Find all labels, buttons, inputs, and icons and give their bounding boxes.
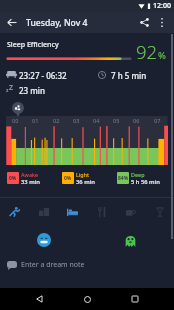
staticText: Tuesday, Nov 4 — [26, 17, 88, 29]
button[interactable]: More options — [153, 12, 171, 33]
staticText: 23 min — [19, 85, 45, 96]
button[interactable]: Back — [0, 12, 24, 33]
button[interactable]: Mood happy — [33, 230, 54, 250]
staticText: 01 — [32, 117, 39, 124]
staticText: 12:00 — [153, 1, 171, 11]
staticText: 84% — [118, 175, 129, 182]
staticText: 02 — [53, 117, 60, 124]
staticText: 06 — [133, 117, 140, 124]
button[interactable]: Share — [134, 12, 154, 33]
staticText: 04 — [93, 117, 100, 124]
button[interactable]: Home — [76, 288, 98, 310]
staticText: 5 h 56 min — [131, 178, 160, 186]
button[interactable]: Sport — [0, 200, 29, 224]
staticText: Sleep Efficiency — [7, 40, 59, 50]
staticText: 36 min — [76, 178, 95, 186]
staticText: 23:27 - 06:32 — [19, 70, 67, 81]
button[interactable]: Recent apps — [124, 288, 146, 310]
button[interactable]: Enter a dream note — [0, 257, 174, 273]
staticText: % — [158, 49, 166, 62]
staticText: Light — [76, 171, 90, 178]
staticText: 05 — [113, 117, 120, 124]
staticText: Enter a dream note — [21, 260, 85, 270]
button[interactable]: Food — [87, 200, 116, 224]
staticText: Awake — [21, 171, 39, 178]
button[interactable]: Bed — [58, 200, 87, 224]
staticText: Deep — [131, 171, 145, 178]
staticText: 00 — [12, 117, 19, 124]
button[interactable]: Alcohol — [145, 200, 174, 224]
staticText: 7 h 5 min — [111, 70, 147, 81]
button[interactable]: Back — [28, 288, 50, 310]
staticText: 03 — [73, 117, 80, 124]
button[interactable]: Dream ghost — [120, 230, 140, 250]
staticText: z — [6, 87, 9, 94]
staticText: Z — [9, 83, 14, 92]
button[interactable]: Coffee — [116, 200, 145, 224]
staticText: 33 min — [21, 178, 40, 186]
staticText: 92 — [136, 39, 158, 64]
staticText: 0% — [9, 175, 17, 182]
staticText: 0% — [64, 175, 72, 182]
staticText: 07 — [154, 117, 161, 124]
button[interactable]: Work — [29, 200, 58, 224]
